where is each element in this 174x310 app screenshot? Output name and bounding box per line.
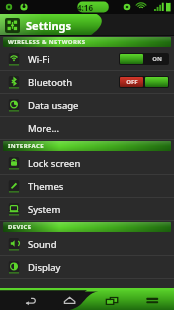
button[interactable]: Data usage: [0, 94, 174, 116]
button[interactable]: Lock screen: [0, 152, 174, 174]
button[interactable]: Bluetooth off: [119, 76, 169, 88]
staticText: Themes: [28, 180, 169, 193]
staticText: INTERFACE: [8, 142, 44, 150]
button[interactable]: Bluetooth: [0, 71, 174, 93]
staticText: Lock screen: [28, 157, 169, 170]
staticText: Settings: [26, 18, 72, 33]
staticText: Sound: [28, 238, 169, 251]
button[interactable]: Sound: [0, 233, 174, 255]
button[interactable]: Themes: [0, 175, 174, 197]
button[interactable]: Menu: [130, 288, 174, 310]
staticText: Bluetooth: [28, 76, 119, 89]
staticText: WIRELESS & NETWORKS: [8, 38, 86, 46]
staticText: Display: [28, 261, 169, 274]
staticText: DEVICE: [8, 223, 32, 231]
button[interactable]: Wi-Fi on: [119, 53, 169, 65]
staticText: More...: [28, 122, 169, 135]
staticText: OFF: [126, 78, 138, 86]
staticText: 4:16: [77, 2, 93, 13]
button[interactable]: Recent apps: [86, 288, 130, 310]
button[interactable]: System: [0, 198, 174, 220]
button[interactable]: Back: [0, 288, 43, 310]
button[interactable]: Home: [43, 288, 86, 310]
staticText: Data usage: [28, 99, 169, 112]
button[interactable]: More...: [0, 117, 174, 139]
staticText: ON: [152, 55, 162, 63]
staticText: Wi-Fi: [28, 53, 119, 66]
button[interactable]: Wi-Fi: [0, 48, 174, 70]
staticText: System: [28, 203, 169, 216]
button[interactable]: Display: [0, 256, 174, 278]
